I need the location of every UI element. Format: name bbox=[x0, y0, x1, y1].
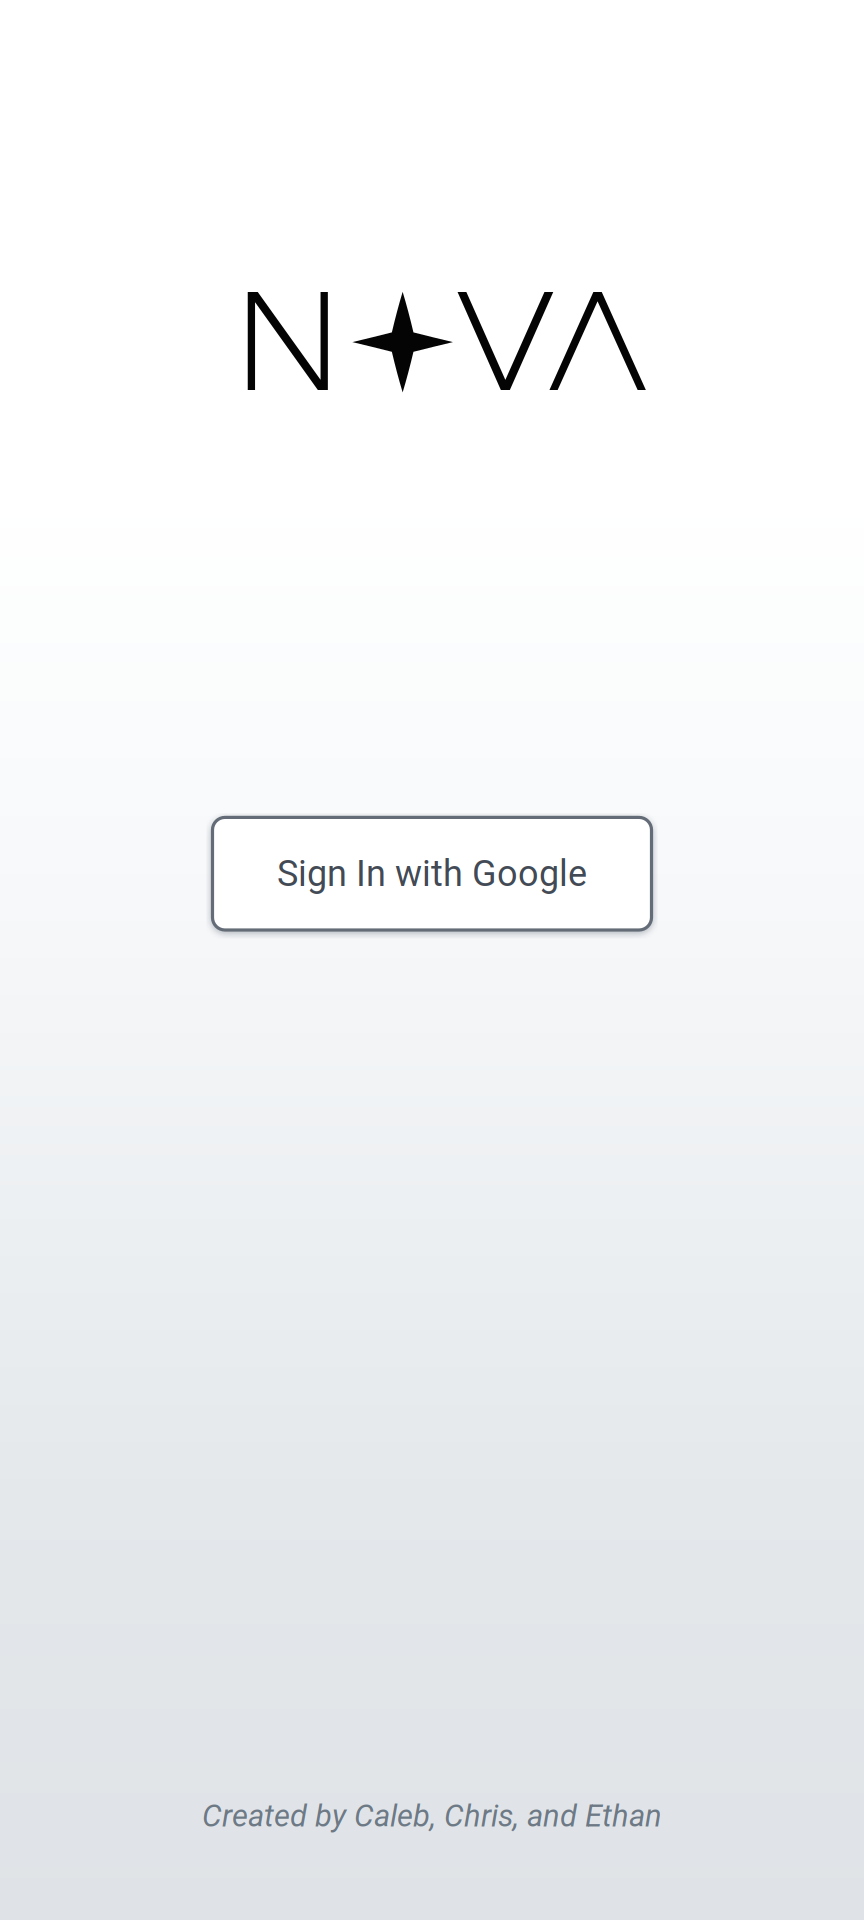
staticText: Sign In with Google bbox=[277, 853, 587, 895]
staticText: Created by Caleb, Chris, and Ethan bbox=[202, 1798, 662, 1834]
button[interactable]: Sign In with Google bbox=[212, 817, 651, 930]
